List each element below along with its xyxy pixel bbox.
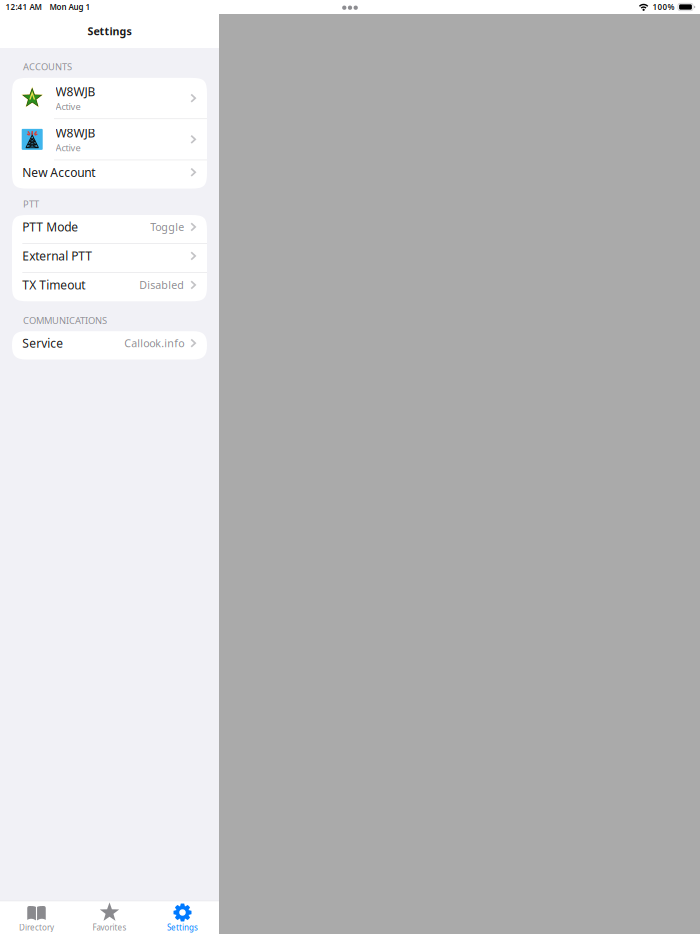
button[interactable]: W8WJB <box>12 78 207 118</box>
button[interactable]: Service <box>12 331 207 359</box>
staticText: W8WJB <box>55 84 95 100</box>
button[interactable]: Settings <box>146 901 219 934</box>
staticText: COMMUNICATIONS <box>23 314 107 327</box>
button[interactable]: PTT Mode <box>12 215 207 243</box>
button[interactable]: Favorites <box>73 901 146 934</box>
staticText: Mon Aug 1 <box>49 2 90 12</box>
staticText: External PTT <box>22 248 92 264</box>
button[interactable]: New Account <box>12 160 207 189</box>
staticText: 12:41 AM <box>5 2 41 12</box>
staticText: Settings <box>87 24 131 38</box>
staticText: 100% <box>653 2 675 12</box>
staticText: New Account <box>22 164 95 180</box>
staticText: ACCOUNTS <box>23 60 72 73</box>
staticText: W8WJB <box>55 125 95 141</box>
button[interactable]: W8WJB <box>12 119 207 160</box>
staticText: PTT <box>23 198 39 210</box>
staticText: Service <box>22 335 63 351</box>
staticText: Active <box>55 100 80 113</box>
staticText: Settings <box>167 922 198 933</box>
staticText: PTT Mode <box>22 219 78 235</box>
button[interactable]: External PTT <box>12 244 207 272</box>
staticText: Active <box>55 141 80 154</box>
button[interactable]: Directory <box>0 901 73 934</box>
staticText: TX Timeout <box>22 277 85 293</box>
staticText: Directory <box>19 922 54 933</box>
staticText: Disabled <box>139 278 184 292</box>
staticText: Callook.info <box>124 336 184 350</box>
staticText: Favorites <box>92 922 126 933</box>
staticText: Toggle <box>150 220 184 234</box>
button[interactable]: TX Timeout <box>12 273 207 301</box>
